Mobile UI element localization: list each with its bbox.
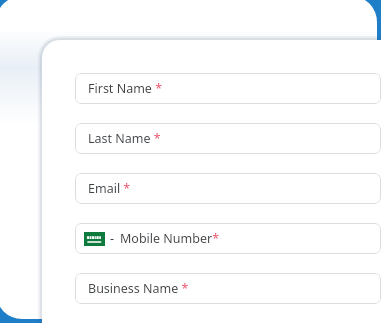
button[interactable]: Email * xyxy=(75,173,381,204)
button[interactable]: First Name * xyxy=(75,73,381,104)
button[interactable]: Business Name * xyxy=(75,273,381,304)
staticText: Mobile Number* xyxy=(120,230,220,247)
staticText: - xyxy=(110,230,115,247)
other: Country code Saudi Arabia xyxy=(84,232,105,246)
button[interactable]: Country code Saudi Arabia xyxy=(75,223,381,254)
button[interactable]: Last Name * xyxy=(75,123,381,154)
staticText: First Name * xyxy=(88,80,163,97)
staticText: Business Name * xyxy=(88,280,189,297)
staticText: Last Name * xyxy=(88,130,161,147)
staticText: Email * xyxy=(88,180,131,197)
